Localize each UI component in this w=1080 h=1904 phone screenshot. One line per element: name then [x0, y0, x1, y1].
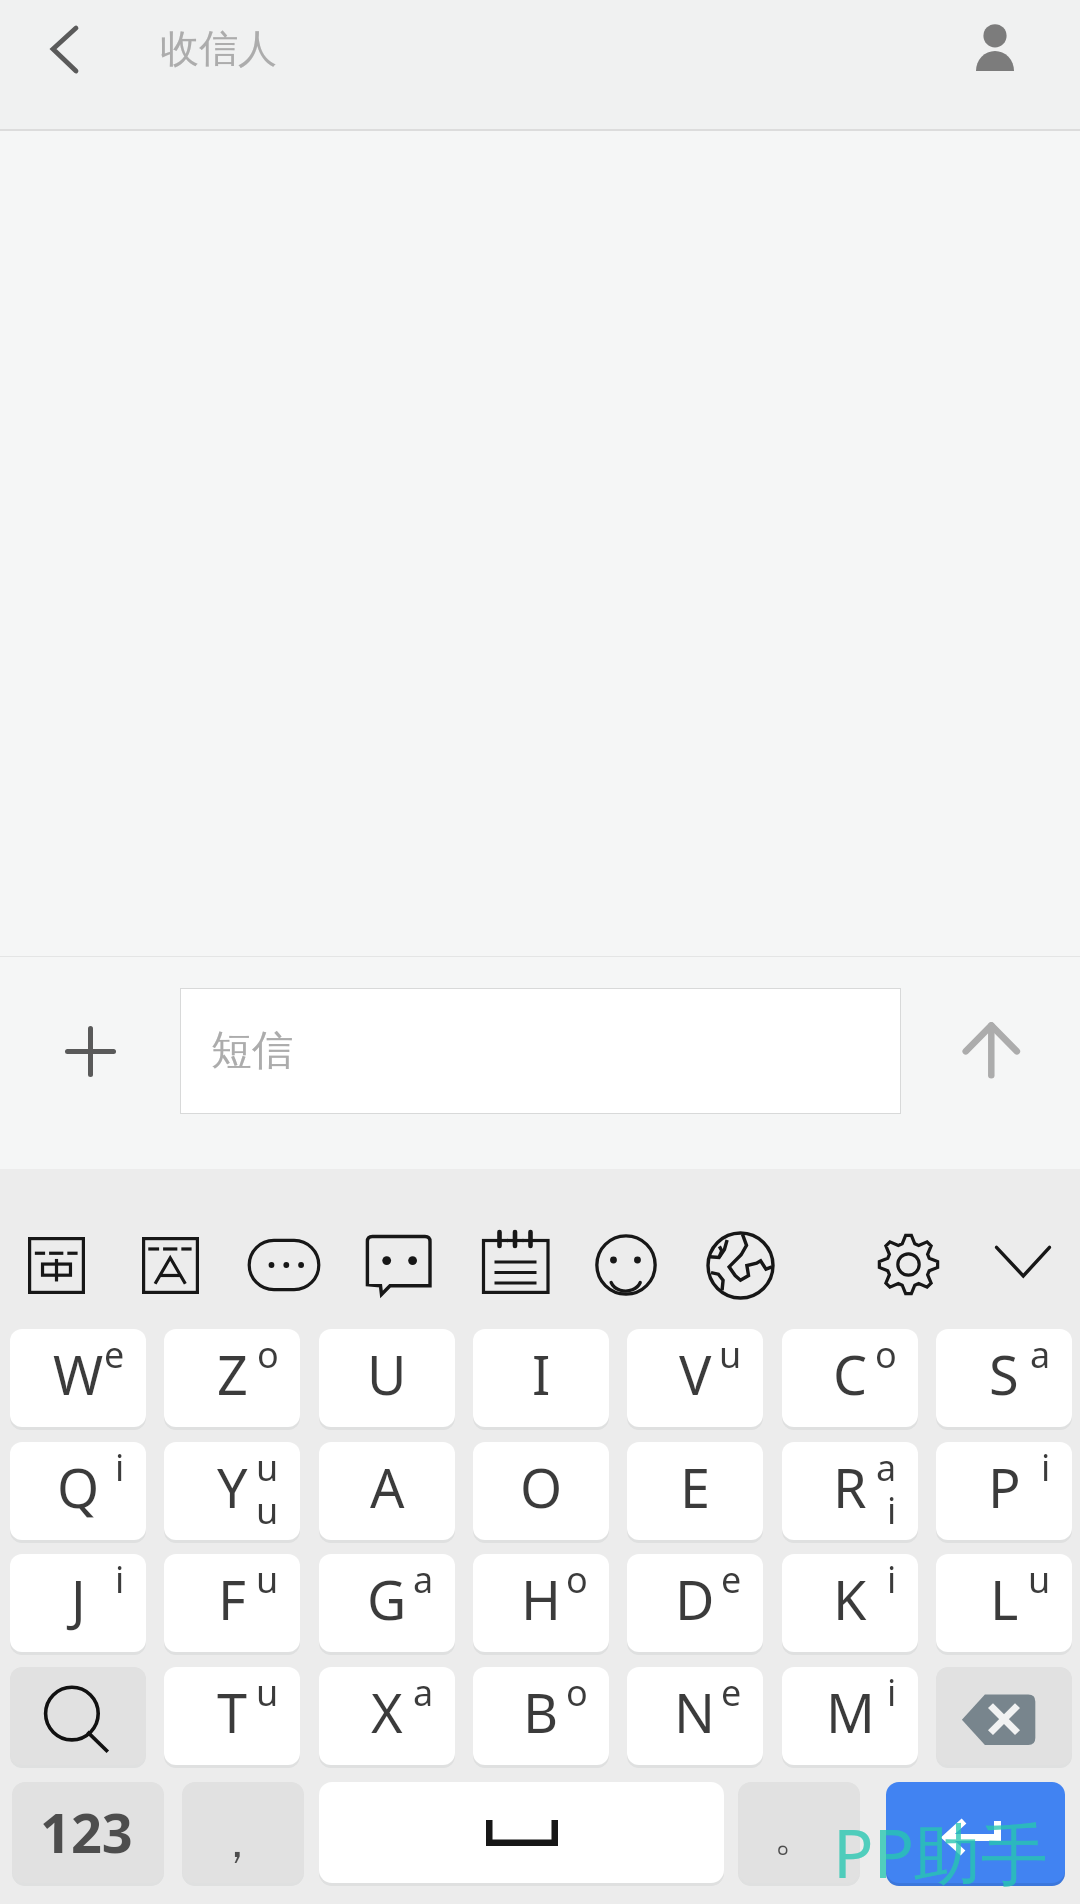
- button[interactable]: 短信: [180, 988, 901, 1114]
- staticText: T: [217, 1675, 248, 1749]
- staticText: 收信人: [160, 24, 277, 73]
- button[interactable]: E: [627, 1442, 763, 1540]
- staticText: PP助手: [833, 1806, 1049, 1898]
- button[interactable]: Chat: [350, 1217, 446, 1313]
- button[interactable]: F: [164, 1554, 300, 1652]
- button[interactable]: Emoji: [578, 1217, 674, 1313]
- staticText: K: [833, 1562, 867, 1636]
- staticText: o: [257, 1330, 279, 1379]
- button[interactable]: A: [319, 1442, 455, 1540]
- button[interactable]: M: [782, 1667, 918, 1765]
- staticText: 短信: [211, 1025, 293, 1077]
- staticText: u: [256, 1486, 279, 1535]
- button[interactable]: Clipboard: [465, 1217, 561, 1313]
- staticText: a: [413, 1555, 434, 1604]
- button[interactable]: G: [319, 1554, 455, 1652]
- button[interactable]: Globe: [692, 1217, 788, 1313]
- staticText: F: [218, 1562, 247, 1636]
- button[interactable]: Phrases: [236, 1217, 332, 1313]
- button[interactable]: Send: [941, 1001, 1041, 1101]
- staticText: Q: [57, 1450, 100, 1524]
- staticText: A: [370, 1450, 405, 1524]
- staticText: a: [1030, 1330, 1051, 1379]
- button[interactable]: Search: [10, 1667, 146, 1765]
- staticText: ，: [215, 1815, 259, 1870]
- staticText: I: [532, 1337, 551, 1411]
- button[interactable]: 123 keyboard: [12, 1782, 164, 1883]
- staticText: M: [826, 1675, 875, 1749]
- staticText: i: [887, 1486, 897, 1535]
- staticText: e: [721, 1555, 742, 1604]
- button[interactable]: D: [627, 1554, 763, 1652]
- button[interactable]: Y: [164, 1442, 300, 1540]
- staticText: D: [675, 1562, 715, 1636]
- button[interactable]: Back: [20, 7, 104, 91]
- button[interactable]: K: [782, 1554, 918, 1652]
- staticText: Y: [217, 1450, 248, 1524]
- button[interactable]: Period: [738, 1782, 860, 1883]
- button[interactable]: Input language: [122, 1217, 218, 1313]
- button[interactable]: L: [936, 1554, 1072, 1652]
- button[interactable]: Backspace: [936, 1667, 1072, 1765]
- button[interactable]: Z: [164, 1329, 300, 1427]
- staticText: H: [521, 1562, 562, 1636]
- button[interactable]: B: [473, 1667, 609, 1765]
- staticText: i: [887, 1668, 897, 1717]
- staticText: i: [115, 1555, 125, 1604]
- staticText: o: [566, 1555, 588, 1604]
- button[interactable]: R: [782, 1442, 918, 1540]
- button[interactable]: Q: [10, 1442, 146, 1540]
- staticText: N: [674, 1675, 716, 1749]
- staticText: i: [1041, 1443, 1051, 1492]
- staticText: u: [1028, 1555, 1051, 1604]
- staticText: J: [71, 1562, 86, 1636]
- button[interactable]: Comma: [182, 1782, 304, 1883]
- button[interactable]: O: [473, 1442, 609, 1540]
- button[interactable]: Add attachment: [40, 1001, 140, 1101]
- button[interactable]: I: [473, 1329, 609, 1427]
- staticText: O: [520, 1450, 563, 1524]
- button[interactable]: N: [627, 1667, 763, 1765]
- staticText: 。: [774, 1810, 816, 1863]
- staticText: P: [988, 1450, 1021, 1524]
- staticText: S: [989, 1337, 1019, 1411]
- staticText: o: [875, 1330, 897, 1379]
- staticText: Z: [217, 1337, 248, 1411]
- button[interactable]: U: [319, 1329, 455, 1427]
- button[interactable]: Choose contact: [953, 7, 1037, 91]
- button[interactable]: X: [319, 1667, 455, 1765]
- staticText: L: [990, 1562, 1019, 1636]
- button[interactable]: J: [10, 1554, 146, 1652]
- staticText: U: [367, 1337, 407, 1411]
- button[interactable]: P: [936, 1442, 1072, 1540]
- staticText: u: [256, 1443, 279, 1492]
- staticText: e: [721, 1668, 742, 1717]
- staticText: V: [679, 1337, 712, 1411]
- button[interactable]: Chinese input: [8, 1217, 104, 1313]
- button[interactable]: Hide keyboard: [975, 1215, 1071, 1311]
- button[interactable]: Enter: [886, 1782, 1065, 1883]
- staticText: G: [367, 1562, 407, 1636]
- staticText: i: [115, 1443, 125, 1492]
- staticText: o: [566, 1668, 588, 1717]
- staticText: W: [53, 1337, 104, 1411]
- button[interactable]: Settings: [860, 1216, 956, 1312]
- staticText: a: [876, 1443, 897, 1492]
- staticText: a: [413, 1668, 434, 1717]
- staticText: B: [523, 1675, 559, 1749]
- staticText: u: [256, 1555, 279, 1604]
- staticText: u: [719, 1330, 742, 1379]
- staticText: i: [887, 1555, 897, 1604]
- button[interactable]: C: [782, 1329, 918, 1427]
- staticText: u: [256, 1668, 279, 1717]
- button[interactable]: S: [936, 1329, 1072, 1427]
- button[interactable]: V: [627, 1329, 763, 1427]
- button[interactable]: H: [473, 1554, 609, 1652]
- staticText: e: [104, 1330, 125, 1379]
- button[interactable]: T: [164, 1667, 300, 1765]
- button[interactable]: W: [10, 1329, 146, 1427]
- button[interactable]: Space: [319, 1782, 724, 1883]
- staticText: X: [371, 1675, 403, 1749]
- staticText: C: [833, 1337, 868, 1411]
- staticText: R: [833, 1450, 867, 1524]
